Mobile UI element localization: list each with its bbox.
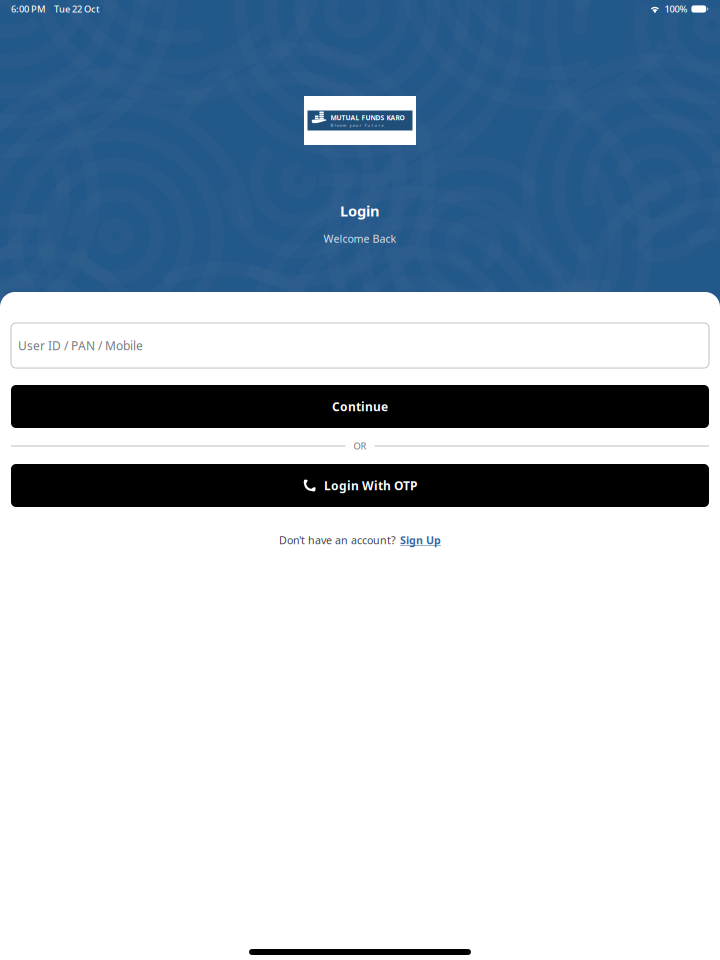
- staticText: Welcome Back: [323, 231, 396, 246]
- staticText: Continue: [332, 398, 388, 414]
- button[interactable]: Don't have an account?: [0, 528, 720, 552]
- staticText: Sign Up: [400, 533, 441, 547]
- staticText: MUTUAL FUNDS KARO: [330, 113, 404, 122]
- staticText: OR: [353, 440, 366, 452]
- staticText: Login: [340, 201, 380, 220]
- staticText: B l o o m y o u r F u t u r e: [330, 122, 383, 128]
- staticText: User ID / PAN / Mobile: [18, 337, 143, 353]
- staticText: Don't have an account?: [279, 533, 396, 547]
- button[interactable]: Continue: [11, 385, 709, 428]
- staticText: Login With OTP: [324, 477, 417, 493]
- button[interactable]: User ID / PAN / Mobile: [11, 323, 709, 368]
- staticText: 6:00 PM: [11, 3, 46, 15]
- staticText: 100%: [664, 3, 687, 15]
- button[interactable]: Login With OTP: [11, 464, 709, 507]
- staticText: Tue 22 Oct: [54, 3, 100, 15]
